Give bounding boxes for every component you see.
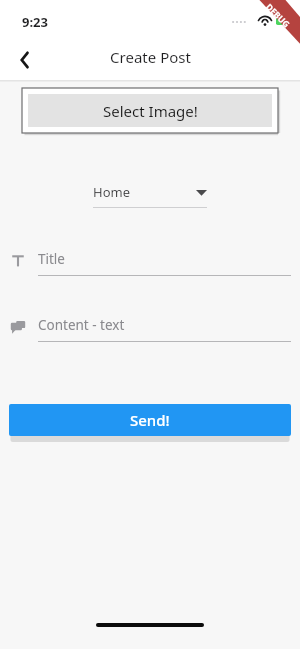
staticText: Select Image! [103, 101, 198, 121]
staticText: DEBUG [263, 1, 293, 31]
staticText: Title [38, 250, 65, 268]
button[interactable]: Title field [9, 250, 291, 276]
button[interactable]: Content field [9, 316, 291, 342]
button[interactable]: Send! [9, 404, 291, 436]
staticText: Create Post [110, 47, 191, 67]
staticText: Send! [130, 410, 170, 430]
staticText: Content - text [38, 316, 125, 334]
staticText: 9:23 [22, 13, 48, 31]
staticText: Home [93, 183, 130, 201]
button[interactable]: Home [93, 181, 207, 208]
button[interactable]: Select Image! [22, 88, 278, 133]
button[interactable]: Back [8, 44, 40, 76]
